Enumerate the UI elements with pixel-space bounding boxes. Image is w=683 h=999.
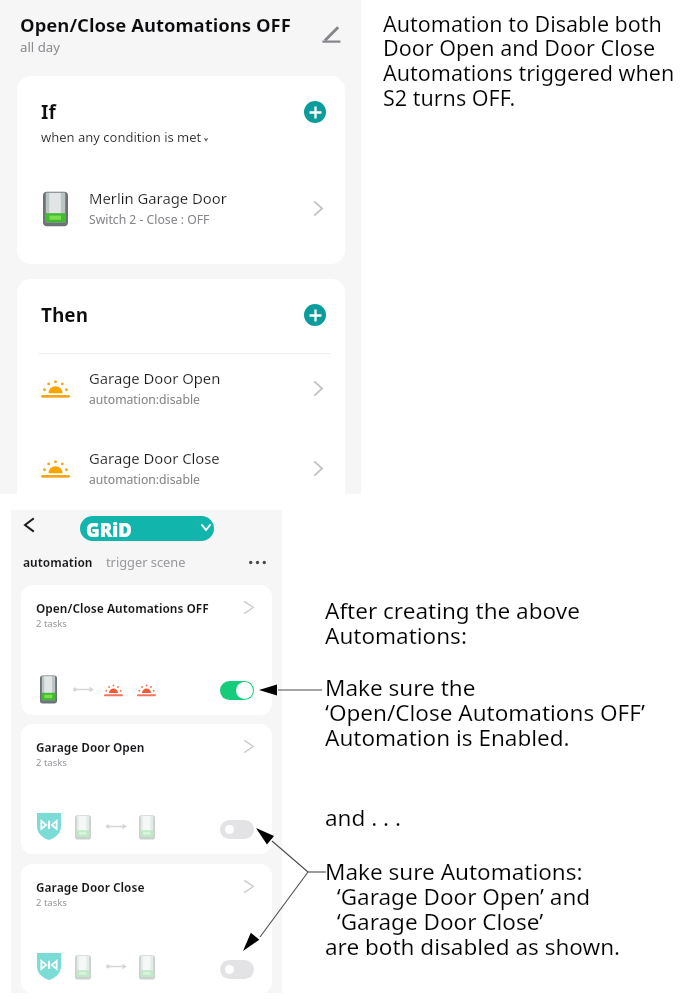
- staticText: 2 tasks: [36, 617, 67, 630]
- staticText: Then: [41, 302, 89, 328]
- button[interactable]: Merlin Garage Door: [17, 177, 345, 239]
- staticText: and . . .: [325, 802, 402, 833]
- button[interactable]: Garage Door Close: [17, 440, 345, 496]
- staticText: 2 tasks: [36, 896, 67, 909]
- staticText: automation:disable: [89, 391, 200, 408]
- staticText: Make sure Automations: ‘Garage Door Open…: [325, 856, 621, 961]
- staticText: when any condition is met: [41, 128, 202, 146]
- staticText: automation: [23, 554, 93, 570]
- button[interactable]: Automation disabled: [220, 960, 254, 979]
- staticText: If: [41, 99, 56, 125]
- button[interactable]: trigger scene: [106, 553, 186, 570]
- button[interactable]: Edit automation: [320, 24, 342, 46]
- staticText: Automation to Disable both Door Open and…: [383, 9, 675, 113]
- staticText: GRiD: [86, 517, 132, 541]
- staticText: trigger scene: [106, 553, 186, 570]
- staticText: 2 tasks: [36, 756, 67, 769]
- button[interactable]: Add condition: [304, 101, 326, 123]
- button[interactable]: Garage Door Open: [17, 360, 345, 416]
- button[interactable]: Garage Door Open: [21, 724, 272, 854]
- staticText: Garage Door Close: [36, 879, 145, 895]
- button[interactable]: GRiD: [80, 516, 214, 541]
- staticText: Merlin Garage Door: [89, 188, 227, 208]
- button[interactable]: Automation enabled: [220, 681, 254, 700]
- button[interactable]: Garage Door Close: [21, 864, 272, 994]
- button[interactable]: Back: [15, 511, 43, 539]
- staticText: Garage Door Close: [89, 448, 220, 468]
- button[interactable]: automation: [23, 554, 93, 570]
- button[interactable]: More options: [245, 550, 269, 574]
- staticText: Open/Close Automations OFF: [20, 12, 291, 37]
- button[interactable]: Add action: [304, 304, 326, 326]
- button[interactable]: Open/Close Automations OFF: [21, 585, 272, 715]
- staticText: After creating the above Automations:: [325, 595, 580, 650]
- staticText: all day: [20, 38, 60, 56]
- staticText: Garage Door Open: [89, 368, 221, 388]
- button[interactable]: Automation disabled: [220, 820, 254, 839]
- staticText: automation:disable: [89, 471, 200, 488]
- staticText: Garage Door Open: [36, 739, 145, 755]
- staticText: Make sure the ‘Open/Close Automations OF…: [325, 672, 645, 752]
- staticText: Open/Close Automations OFF: [36, 600, 209, 616]
- staticText: Switch 2 - Close : OFF: [89, 211, 210, 228]
